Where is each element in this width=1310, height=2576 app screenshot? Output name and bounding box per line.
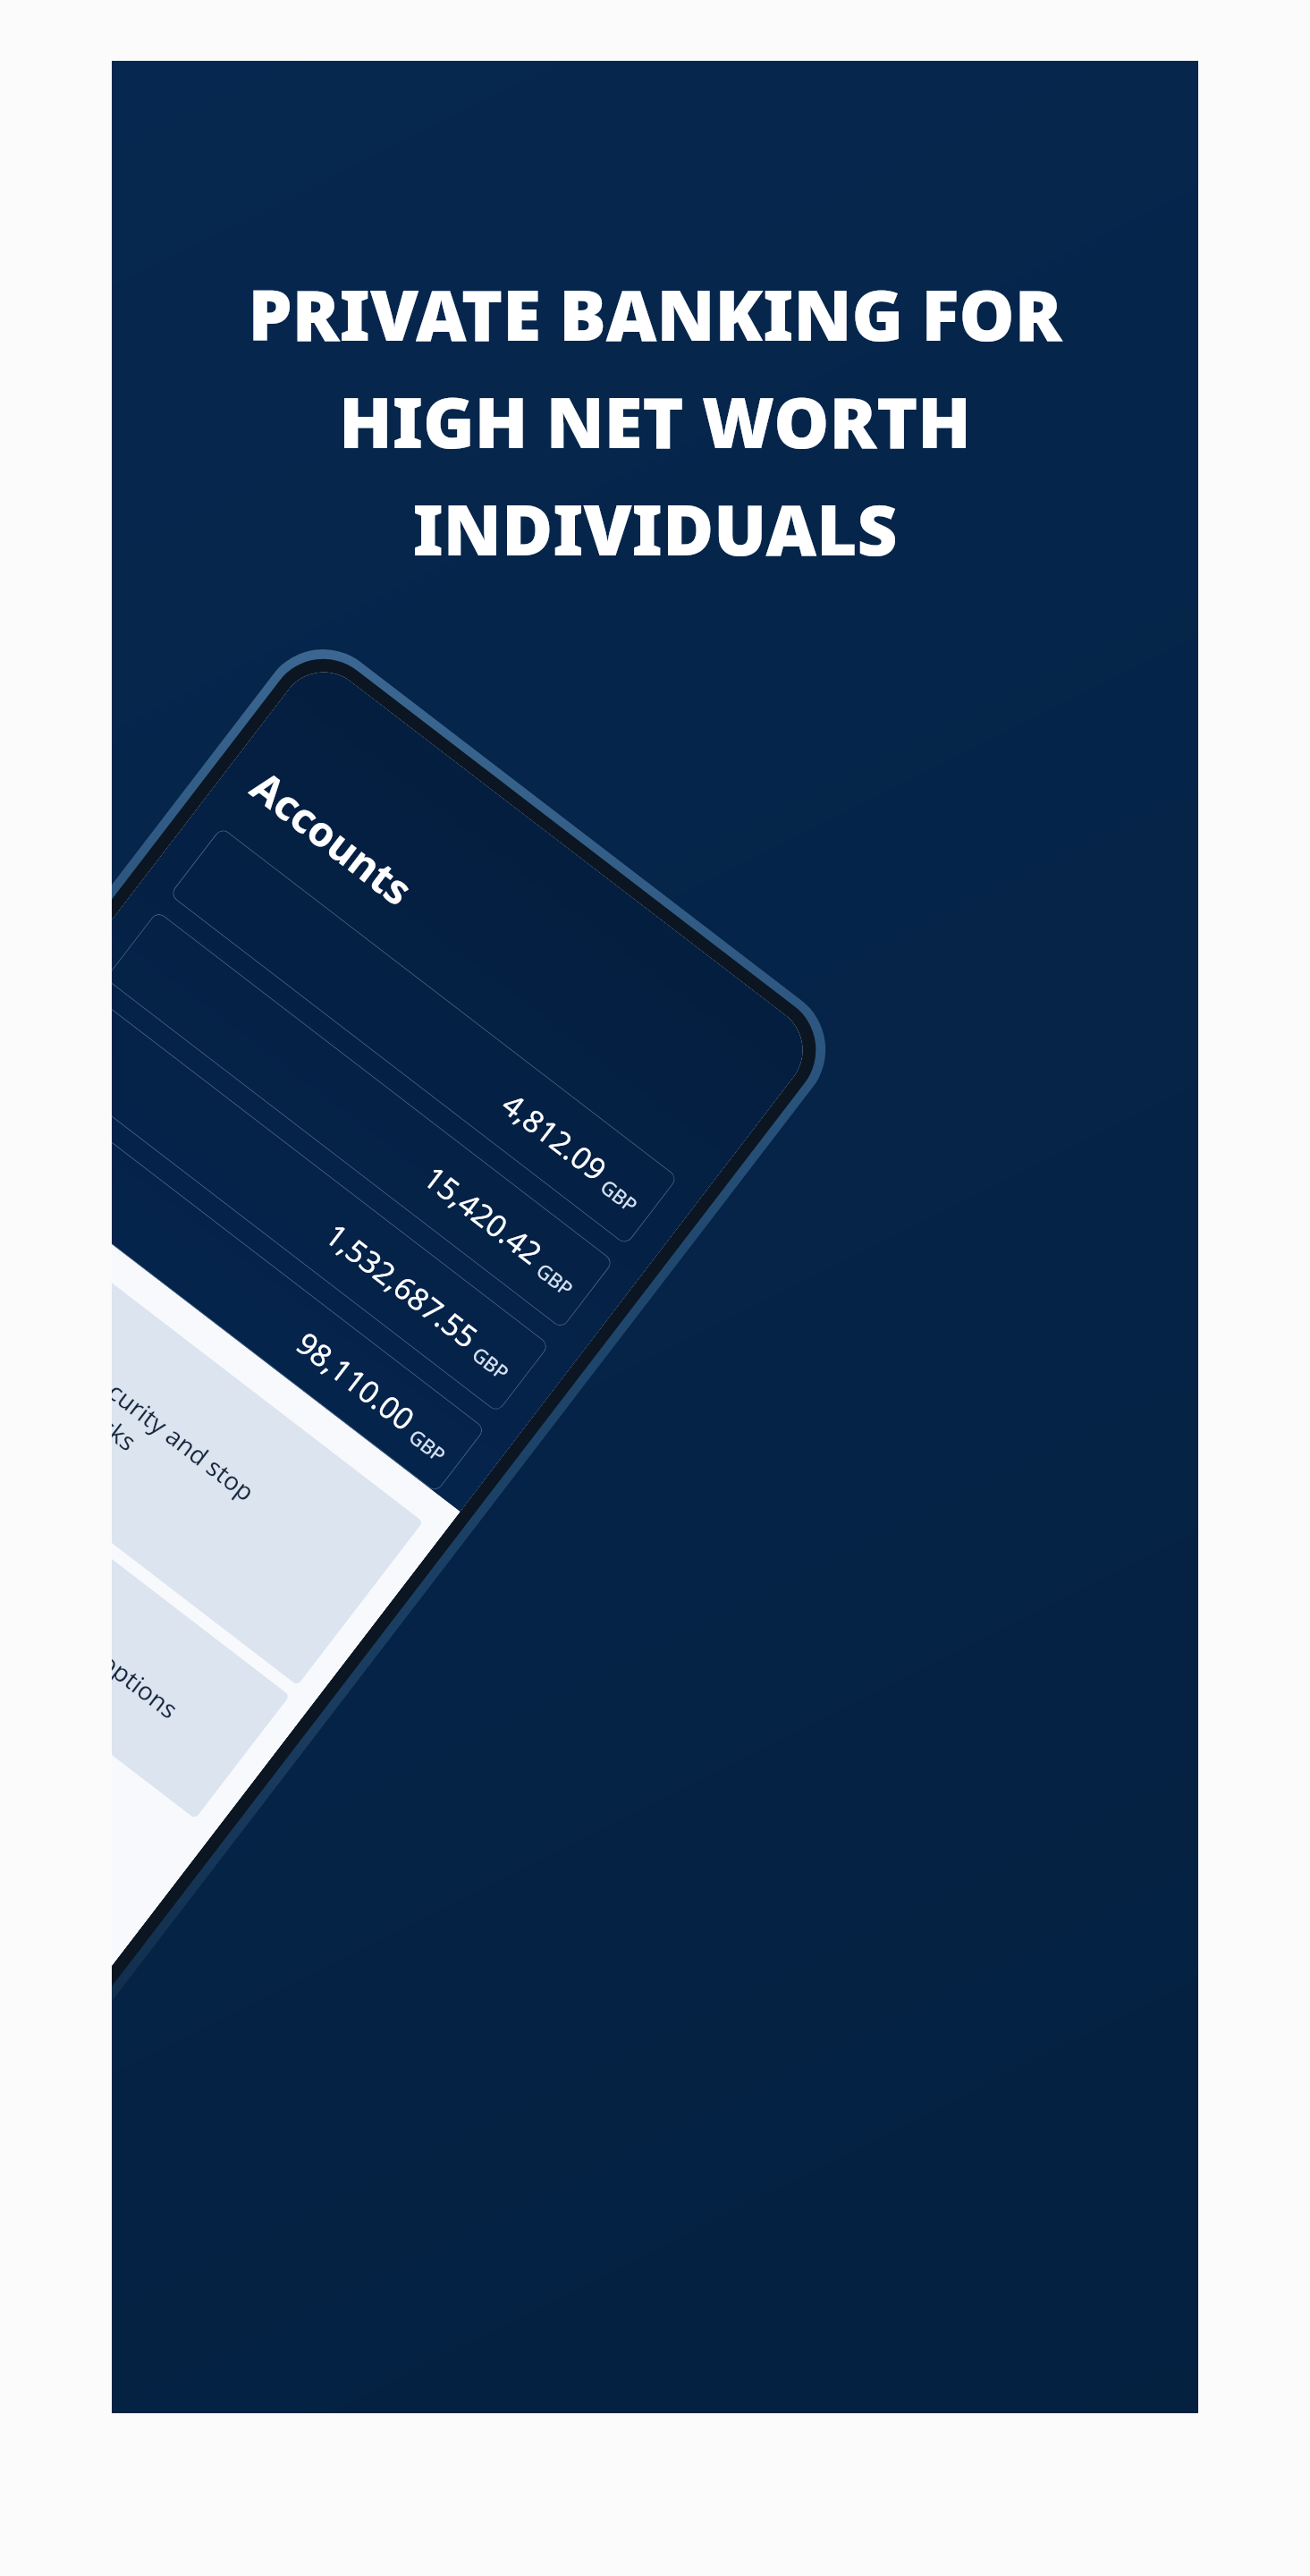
button[interactable]: 15,420.42 (112, 911, 614, 1329)
staticText: 15,420.42 (416, 1156, 551, 1274)
staticText: 1,532,687.55 (318, 1214, 487, 1357)
staticText: GBP (531, 1257, 579, 1302)
staticText: GBP (596, 1173, 643, 1218)
staticText: GBP (404, 1423, 452, 1468)
staticText: 98,110.00 (288, 1322, 423, 1440)
button[interactable]: 98,110.00 (112, 1078, 486, 1493)
staticText: GBP (467, 1340, 515, 1385)
button[interactable]: £ (112, 1336, 290, 1819)
staticText: 4,812.09 (494, 1084, 615, 1190)
staticText: PRIVATE BANKING FOR HIGH NET WORTH INDIV… (248, 267, 1062, 576)
staticText: Register for extra security and stop fra… (112, 1230, 262, 1534)
staticText: Grow your cash with access options that … (112, 1444, 186, 1752)
button[interactable]: 1,532,687.55 (112, 994, 550, 1413)
button[interactable]: Bank safely (112, 1162, 423, 1686)
staticText: Accounts (240, 758, 424, 918)
button[interactable]: 4,812.09 (169, 827, 678, 1246)
